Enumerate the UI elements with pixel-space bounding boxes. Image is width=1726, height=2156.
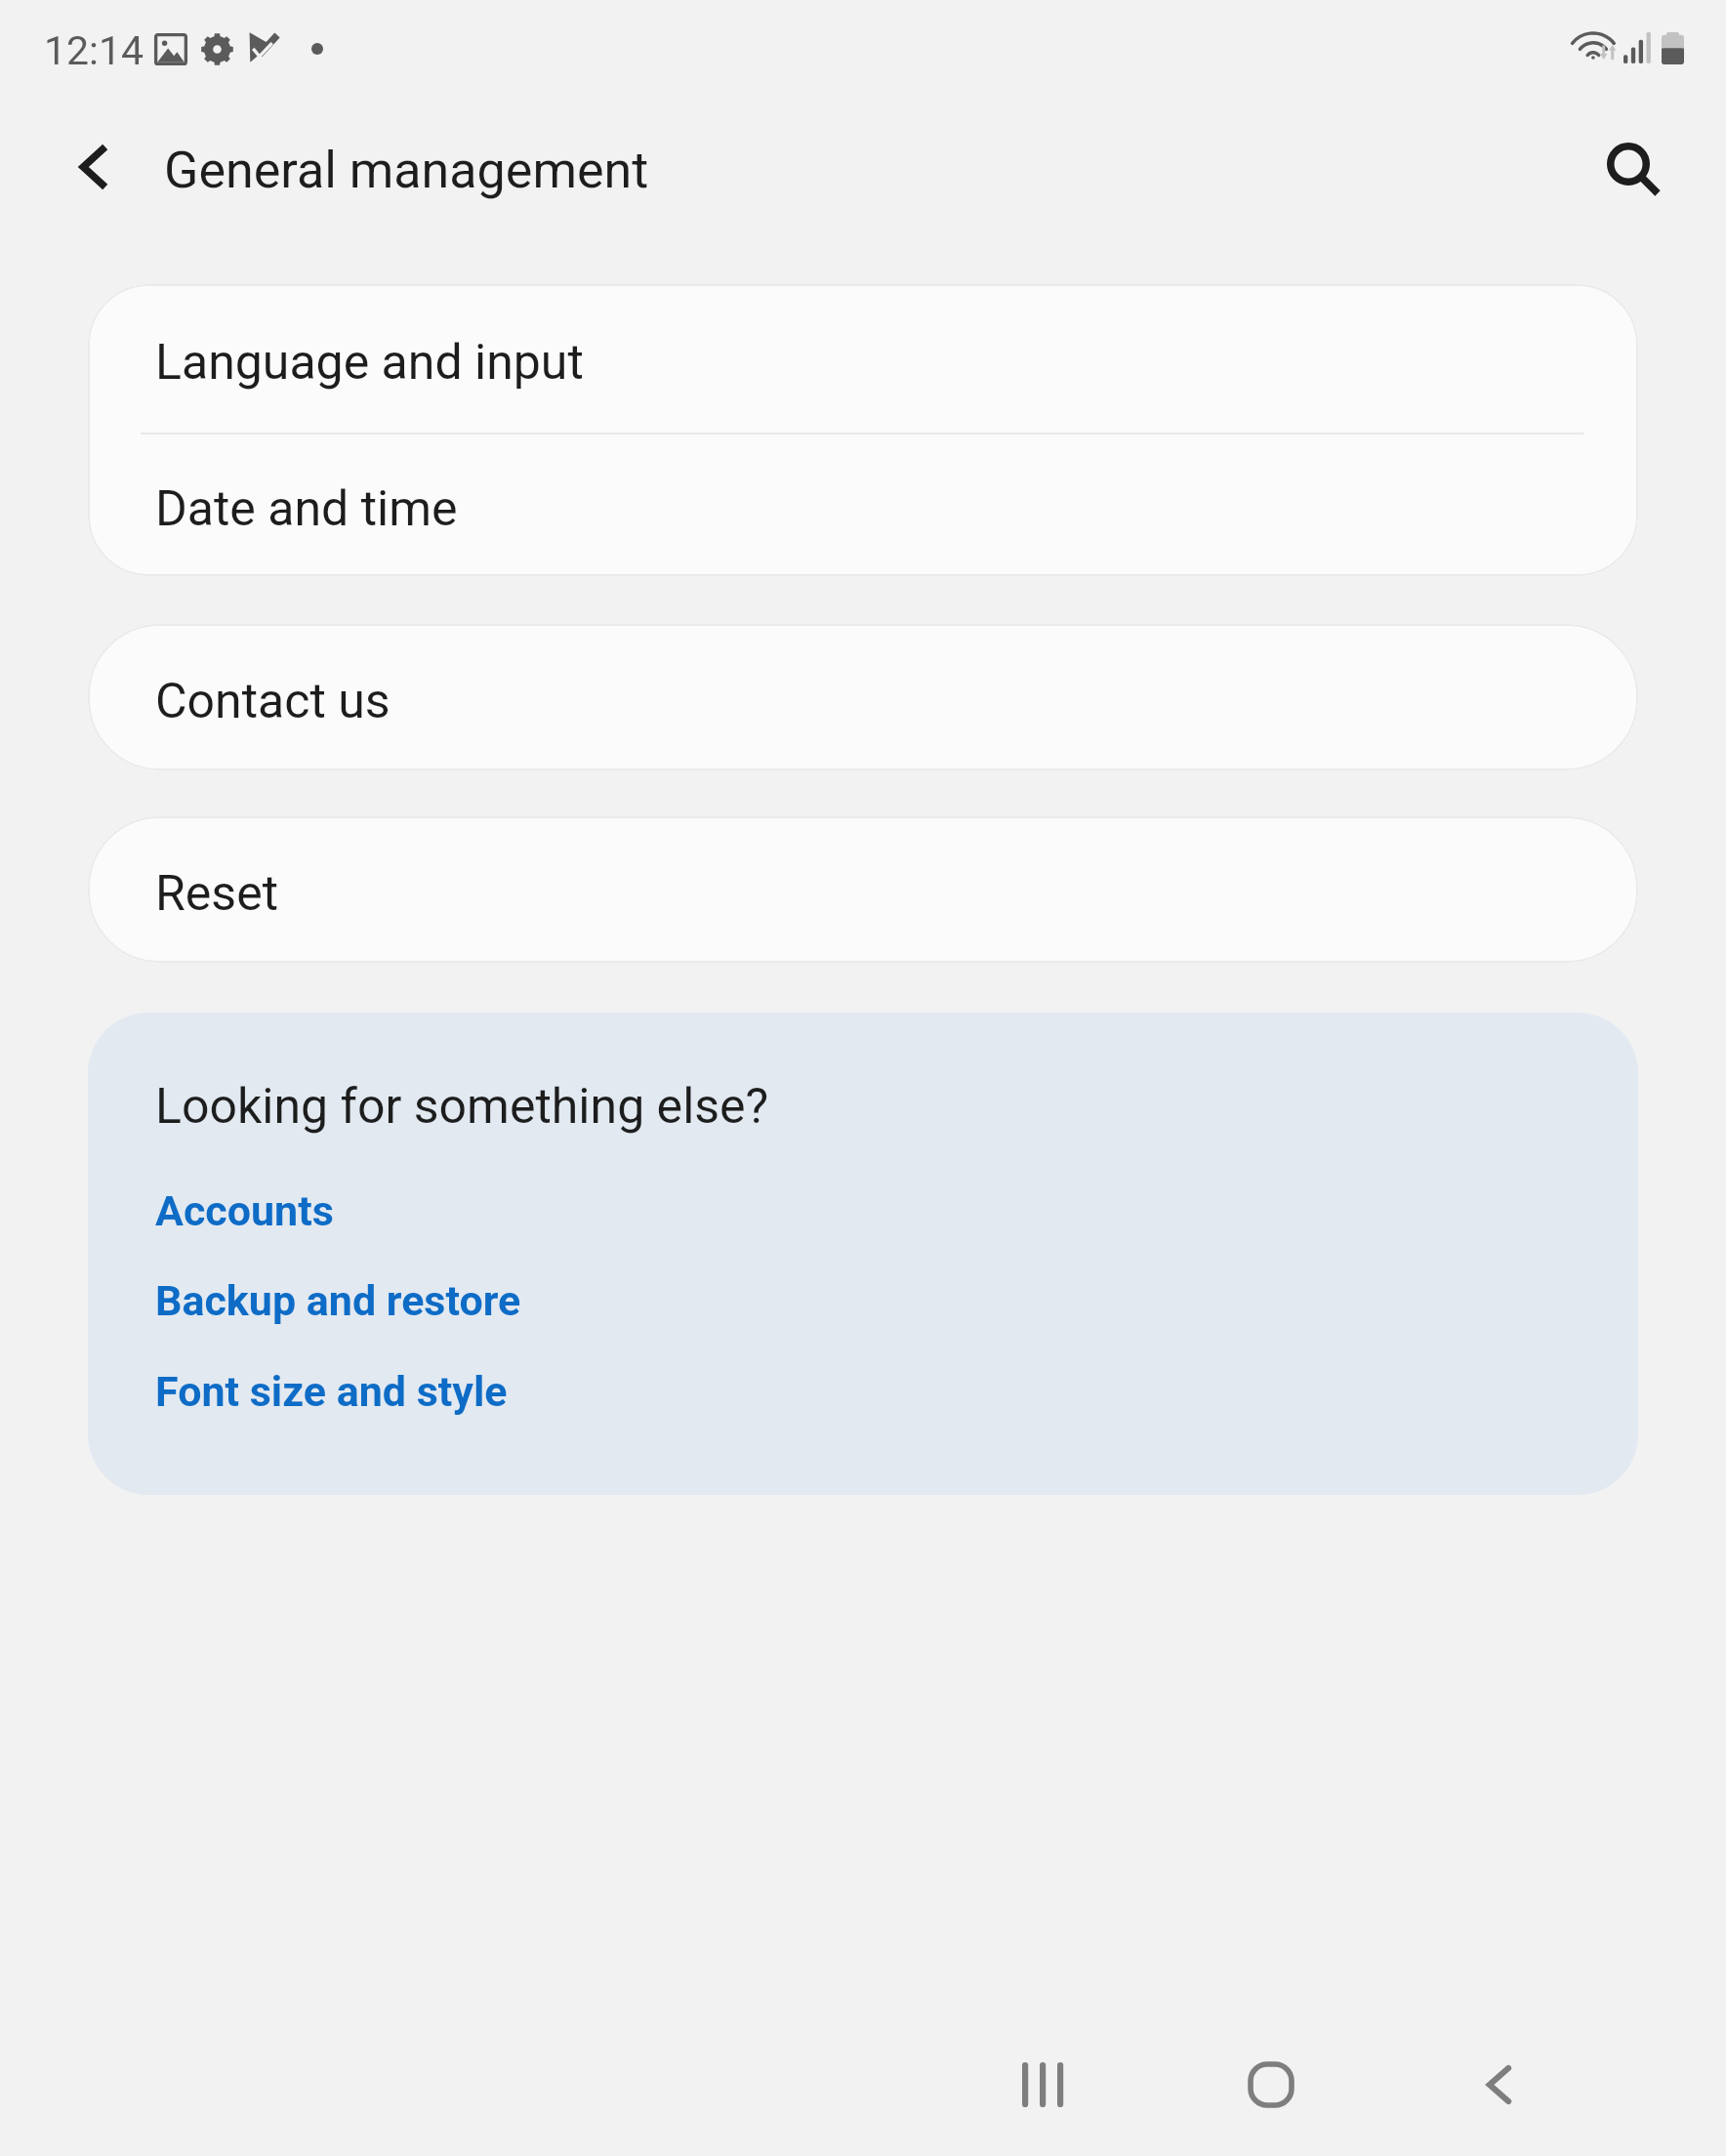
- staticText: Backup and restore: [155, 1276, 521, 1325]
- button[interactable]: Back: [1420, 2012, 1577, 2156]
- button[interactable]: Font size and style: [155, 1367, 508, 1416]
- staticText: Looking for something else?: [155, 1078, 769, 1136]
- staticText: 12:14: [44, 27, 144, 74]
- staticText: Date and time: [155, 480, 458, 538]
- staticText: Contact us: [155, 673, 390, 730]
- staticText: Language and input: [155, 334, 584, 392]
- staticText: General management: [164, 141, 649, 200]
- button[interactable]: Navigate up: [35, 110, 148, 224]
- button[interactable]: Reset: [88, 816, 1638, 963]
- button[interactable]: Date and time: [88, 435, 1638, 576]
- button[interactable]: Accounts: [155, 1186, 334, 1235]
- button[interactable]: Recent apps: [965, 2012, 1121, 2156]
- staticText: Accounts: [155, 1186, 334, 1235]
- staticText: Reset: [155, 865, 279, 923]
- button[interactable]: Home: [1193, 2012, 1349, 2156]
- staticText: Font size and style: [155, 1367, 508, 1416]
- button[interactable]: Language and input: [88, 284, 1638, 433]
- button[interactable]: Search: [1574, 111, 1683, 221]
- button[interactable]: Contact us: [88, 624, 1638, 770]
- button[interactable]: Backup and restore: [155, 1276, 521, 1325]
